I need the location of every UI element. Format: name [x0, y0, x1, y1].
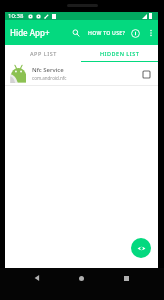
button[interactable]: Recent apps: [117, 269, 135, 287]
staticText: Hide App+: [10, 27, 50, 38]
button[interactable]: HOW TO USE?: [86, 25, 127, 40]
button[interactable]: APP LIST: [5, 45, 81, 62]
staticText: Nfc Service: [32, 66, 64, 74]
button[interactable]: Help: [128, 26, 142, 40]
button[interactable]: More options: [144, 26, 158, 40]
button[interactable]: Search: [68, 25, 84, 41]
button[interactable]: Show hidden apps: [131, 238, 151, 258]
button[interactable]: Nfc Service: [5, 62, 158, 85]
staticText: HIDDEN LIST: [100, 50, 140, 57]
button[interactable]: Home: [72, 269, 90, 287]
staticText: 10:38: [8, 12, 24, 20]
staticText: HOW TO USE?: [88, 29, 125, 36]
staticText: APP LIST: [30, 50, 57, 57]
button[interactable]: HIDDEN LIST: [81, 45, 158, 62]
staticText: com.android.nfc: [32, 75, 67, 81]
button[interactable]: Back: [28, 269, 46, 287]
